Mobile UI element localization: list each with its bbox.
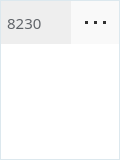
staticText: 8230 [7, 13, 42, 33]
button[interactable]: More options [71, 1, 119, 44]
button[interactable]: 8230 [1, 1, 71, 44]
